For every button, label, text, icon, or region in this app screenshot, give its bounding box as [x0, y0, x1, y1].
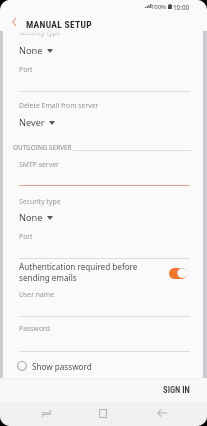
staticText: MANUAL SETUP [26, 19, 92, 30]
staticText: SMTP server [19, 160, 59, 169]
staticText: None [19, 44, 43, 57]
staticText: Security type [19, 197, 61, 206]
button[interactable]: Back [148, 401, 176, 425]
staticText: Port [19, 232, 33, 241]
staticText: 10:00 [173, 3, 190, 12]
staticText: Show password [32, 361, 92, 372]
staticText: Delete Email from server [19, 101, 99, 110]
staticText: Security type [19, 28, 61, 37]
staticText: None [19, 211, 43, 224]
button[interactable]: SIGN IN [155, 382, 197, 398]
staticText: Authentication required before sending e… [19, 261, 138, 283]
staticText: Password [19, 324, 50, 333]
button[interactable]: Authentication required, on [169, 268, 187, 279]
button[interactable]: Navigate up [0, 13, 25, 31]
staticText: 100% [151, 3, 167, 11]
staticText: User name [19, 290, 55, 299]
button[interactable]: Home [89, 401, 117, 425]
staticText: Never [19, 116, 45, 129]
staticText: SIGN IN [163, 385, 190, 395]
staticText: Port [19, 65, 33, 74]
button[interactable]: Recent apps [32, 401, 60, 425]
button[interactable]: Show password [0, 356, 207, 376]
staticText: OUTGOING SERVER [13, 143, 72, 152]
